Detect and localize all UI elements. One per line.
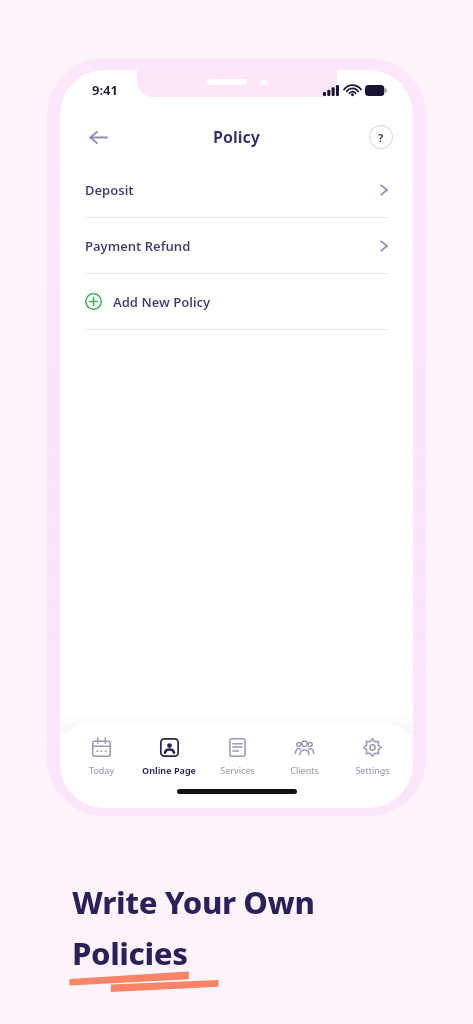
staticText: Deposit (85, 181, 380, 199)
staticText: Add New Policy (113, 293, 211, 311)
staticText: Today (89, 764, 114, 776)
button[interactable]: Help (369, 125, 393, 149)
staticText: ? (378, 130, 384, 145)
button[interactable]: Payment Refund (60, 218, 413, 273)
staticText: Payment Refund (85, 237, 380, 255)
button[interactable]: Back (78, 117, 118, 157)
button[interactable]: Today (68, 736, 134, 778)
button[interactable]: Add New Policy (60, 274, 413, 329)
button[interactable]: Services (204, 736, 270, 778)
staticText: Online Page (142, 764, 196, 776)
staticText: 9:41 (92, 81, 118, 99)
button[interactable]: Settings (339, 736, 405, 778)
staticText: Services (220, 764, 255, 776)
staticText: Write Your Own (72, 881, 315, 923)
staticText: Policies (72, 932, 188, 974)
staticText: Policy (213, 126, 260, 148)
button[interactable]: Clients (271, 736, 337, 778)
staticText: Clients (290, 764, 319, 776)
button[interactable]: Online Page (136, 736, 202, 778)
staticText: Settings (355, 764, 390, 776)
button[interactable]: Deposit (60, 162, 413, 217)
